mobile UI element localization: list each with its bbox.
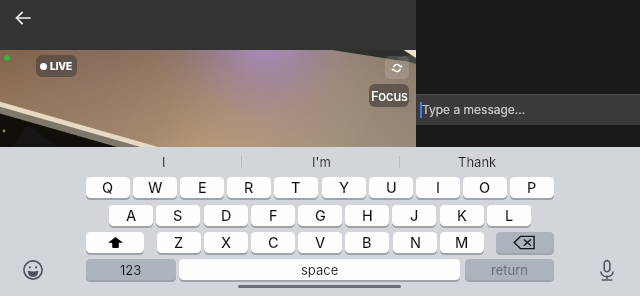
staticText: U <box>386 179 397 197</box>
button[interactable]: 123 <box>86 259 176 280</box>
staticText: M <box>455 234 469 252</box>
staticText: space <box>301 262 339 278</box>
button[interactable]: L <box>487 205 531 226</box>
button[interactable]: O <box>463 177 507 198</box>
staticText: N <box>410 234 421 252</box>
button[interactable]: T <box>274 177 318 198</box>
staticText: 123 <box>120 262 142 278</box>
button[interactable]: K <box>440 205 484 226</box>
button[interactable]: Q <box>86 177 130 198</box>
staticText: I <box>162 154 166 170</box>
button[interactable]: P <box>510 177 554 198</box>
button[interactable]: Type a message... <box>416 94 640 125</box>
staticText: W <box>148 179 163 197</box>
staticText: G <box>315 207 326 225</box>
staticText: Focus <box>371 88 408 104</box>
button[interactable] <box>86 232 144 253</box>
button[interactable]: N <box>393 232 437 253</box>
staticText: H <box>362 207 373 225</box>
button[interactable] <box>496 232 554 253</box>
staticText: P <box>527 179 537 197</box>
staticText: O <box>479 179 491 197</box>
staticText: return <box>491 262 528 278</box>
button[interactable]: return <box>465 259 554 280</box>
staticText: S <box>173 207 183 225</box>
button[interactable]: I'm <box>243 147 399 176</box>
button[interactable]: W <box>133 177 177 198</box>
button[interactable]: D <box>204 205 248 226</box>
button[interactable]: V <box>298 232 342 253</box>
button[interactable]: Y <box>322 177 366 198</box>
staticText: R <box>244 179 254 197</box>
staticText: E <box>198 179 207 197</box>
staticText: Type a message... <box>422 102 526 117</box>
button[interactable]: Switch camera <box>385 56 409 79</box>
staticText: L <box>505 207 514 225</box>
button[interactable]: I <box>86 147 242 176</box>
button[interactable]: R <box>227 177 271 198</box>
staticText: X <box>221 234 232 252</box>
button[interactable]: F <box>251 205 295 226</box>
staticText: K <box>457 207 467 225</box>
staticText: I <box>436 179 440 197</box>
staticText: D <box>221 207 232 225</box>
button[interactable]: S <box>156 205 200 226</box>
button[interactable]: H <box>345 205 389 226</box>
button[interactable]: G <box>298 205 342 226</box>
staticText: Thank <box>458 154 497 170</box>
staticText: Z <box>174 234 184 252</box>
staticText: C <box>268 234 279 252</box>
button[interactable]: Emoji keyboard <box>18 255 48 285</box>
staticText: I'm <box>312 154 331 170</box>
staticText: LIVE <box>50 60 73 72</box>
button[interactable]: Back <box>1 0 45 36</box>
staticText: A <box>126 207 137 225</box>
button[interactable]: Z <box>157 232 201 253</box>
staticText: B <box>362 234 372 252</box>
button[interactable]: Focus <box>369 84 409 107</box>
button[interactable]: B <box>345 232 389 253</box>
button[interactable]: Thank <box>400 147 555 176</box>
button[interactable]: U <box>369 177 413 198</box>
button[interactable]: C <box>251 232 295 253</box>
staticText: Q <box>102 179 114 197</box>
button[interactable]: X <box>204 232 248 253</box>
staticText: T <box>291 179 301 197</box>
staticText: F <box>269 207 278 225</box>
staticText: J <box>410 207 419 225</box>
button[interactable]: space <box>179 259 460 280</box>
button[interactable]: Dictation <box>592 255 622 285</box>
button[interactable]: I <box>416 177 460 198</box>
button[interactable]: J <box>392 205 436 226</box>
button[interactable]: E <box>180 177 224 198</box>
button[interactable]: M <box>440 232 484 253</box>
staticText: Y <box>339 179 350 197</box>
button[interactable]: A <box>109 205 153 226</box>
staticText: V <box>315 234 326 252</box>
button[interactable]: LIVE <box>36 55 77 77</box>
